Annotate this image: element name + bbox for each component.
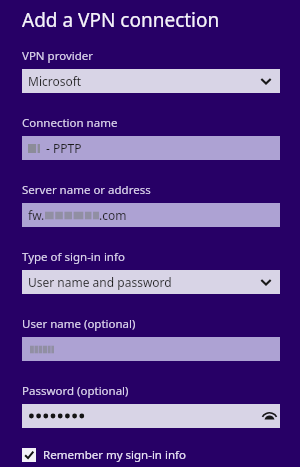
staticText: User name (optional): [22, 316, 136, 332]
button[interactable]: [22, 337, 280, 361]
staticText: Add a VPN connection: [22, 7, 220, 33]
staticText: Connection name: [22, 115, 118, 131]
staticText: User name and password: [28, 274, 172, 290]
button[interactable]: Remember my sign-in info: [22, 447, 280, 463]
button[interactable]: Show password: [258, 405, 280, 427]
staticText: Microsoft: [28, 73, 82, 89]
staticText: fw.: [28, 207, 45, 223]
staticText: .com: [99, 207, 127, 223]
staticText: - PPTP: [43, 140, 82, 156]
button[interactable]: fw.: [22, 203, 280, 227]
staticText: Type of sign-in info: [22, 249, 125, 265]
staticText: VPN provider: [22, 48, 94, 64]
button[interactable]: - PPTP: [22, 136, 280, 160]
staticText: Server name or address: [22, 182, 151, 198]
staticText: Remember my sign-in info: [43, 447, 186, 463]
button[interactable]: Microsoft: [22, 69, 280, 93]
button[interactable]: User name and password: [22, 270, 280, 294]
staticText: Password (optional): [22, 383, 129, 399]
button[interactable]: Show password: [22, 404, 280, 428]
